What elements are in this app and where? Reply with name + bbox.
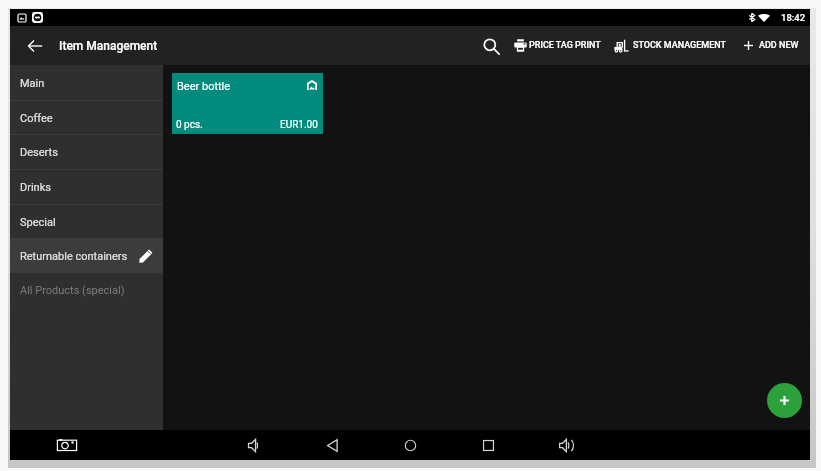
button[interactable]: Drinks [10,170,163,205]
staticText: ADD NEW [759,40,799,51]
staticText: Item Management [59,39,158,53]
staticText: Returnable containers [20,250,128,263]
staticText: 18:42 [781,12,806,23]
button[interactable]: Volume down [239,430,269,460]
button[interactable]: Beer bottle [172,73,323,134]
button[interactable]: STOCK MANAGEMENT [607,26,735,65]
button[interactable]: Coffee [10,101,163,135]
staticText: EUR1.00 [280,119,318,131]
staticText: Main [20,77,45,90]
staticText: Drinks [20,181,51,194]
staticText: All Products (special) [20,284,125,297]
button[interactable]: Special [10,205,163,239]
button[interactable]: Search [474,29,508,63]
button[interactable]: Add item [767,383,802,418]
button[interactable]: Back [317,430,347,460]
button[interactable]: PRICE TAG PRINT [508,26,607,65]
staticText: Deserts [20,146,58,159]
staticText: Beer bottle [177,80,231,93]
button[interactable]: Deserts [10,135,163,170]
button[interactable]: Recents [473,430,503,460]
other: Edit category [137,247,155,265]
button[interactable]: ADD NEW [735,26,810,65]
staticText: Coffee [20,112,53,125]
staticText: 0 pcs. [176,119,203,131]
button[interactable]: Screenshot [49,430,85,460]
button[interactable]: Returnable containers [10,239,163,273]
button[interactable]: Home [395,430,425,460]
staticText: PRICE TAG PRINT [529,40,601,51]
button[interactable]: Volume up [551,430,581,460]
button[interactable]: All Products (special) [10,273,163,307]
staticText: STOCK MANAGEMENT [633,40,727,51]
button[interactable]: Back [18,29,52,63]
button[interactable]: Main [10,65,163,101]
staticText: Special [20,216,56,229]
